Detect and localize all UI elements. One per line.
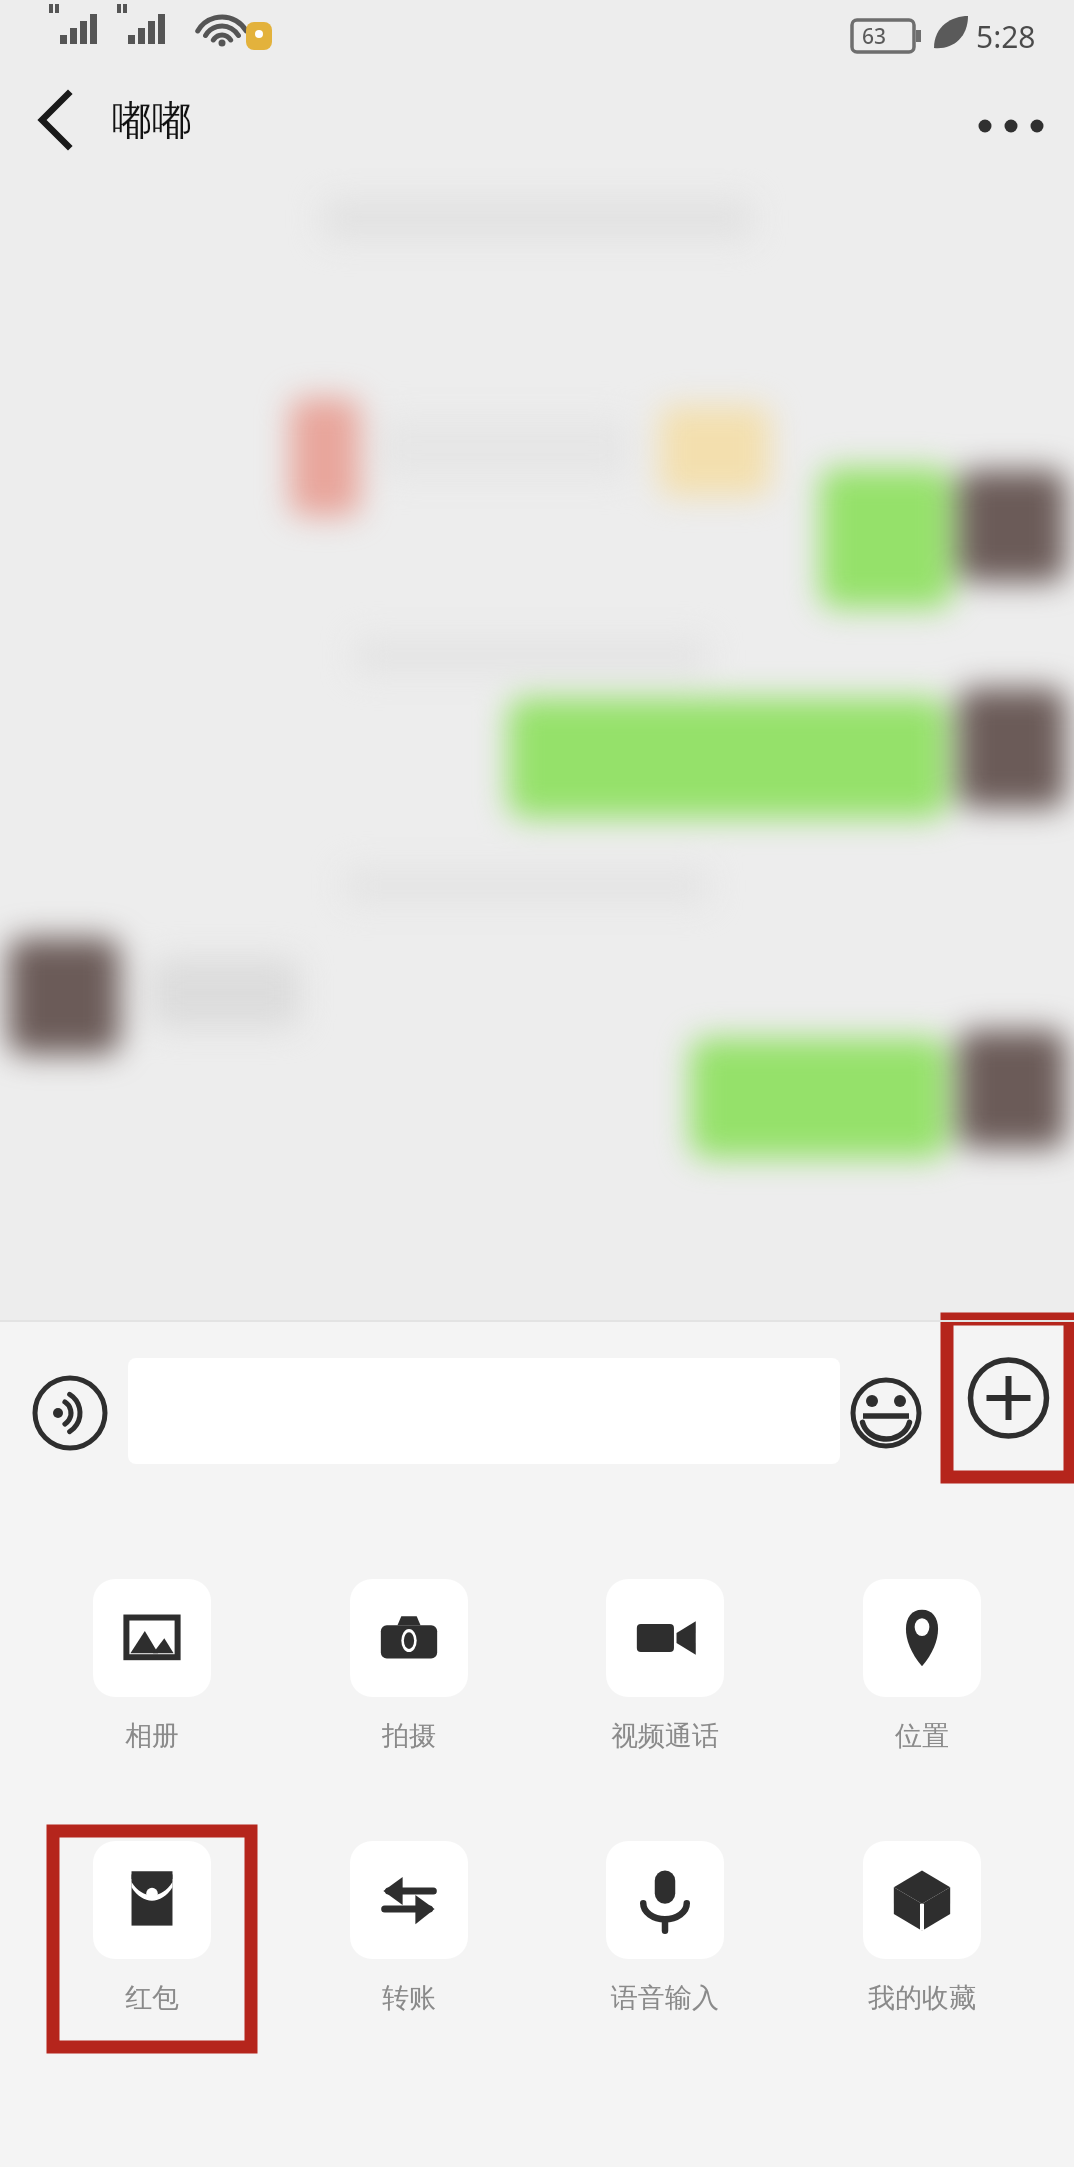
- button[interactable]: 位置: [817, 1567, 1027, 1787]
- staticText: 拍摄: [382, 1719, 436, 1753]
- staticText: 转账: [382, 1981, 436, 2015]
- button[interactable]: 语音输入: [560, 1829, 770, 2049]
- staticText: 红包: [125, 1981, 179, 2015]
- button[interactable]: Voice input: [18, 1361, 122, 1465]
- staticText: 63: [862, 22, 887, 51]
- button[interactable]: 我的收藏: [817, 1829, 1027, 2049]
- staticText: 视频通话: [611, 1719, 719, 1753]
- button[interactable]: 视频通话: [560, 1567, 770, 1787]
- staticText: 位置: [895, 1719, 949, 1753]
- button[interactable]: Back: [0, 72, 96, 168]
- button[interactable]: More functions: [945, 1317, 1072, 1479]
- button[interactable]: 拍摄: [304, 1567, 514, 1787]
- button[interactable]: Emoji: [840, 1367, 932, 1459]
- staticText: 相册: [125, 1719, 179, 1753]
- button[interactable]: More options: [964, 72, 1074, 168]
- button[interactable]: 转账: [304, 1829, 514, 2049]
- staticText: 我的收藏: [868, 1981, 976, 2015]
- button[interactable]: 嘟嘟: [112, 95, 192, 145]
- staticText: 5:28: [976, 16, 1036, 57]
- staticText: 语音输入: [611, 1981, 719, 2015]
- button[interactable]: 相册: [47, 1567, 257, 1787]
- button[interactable]: 红包: [47, 1829, 257, 2049]
